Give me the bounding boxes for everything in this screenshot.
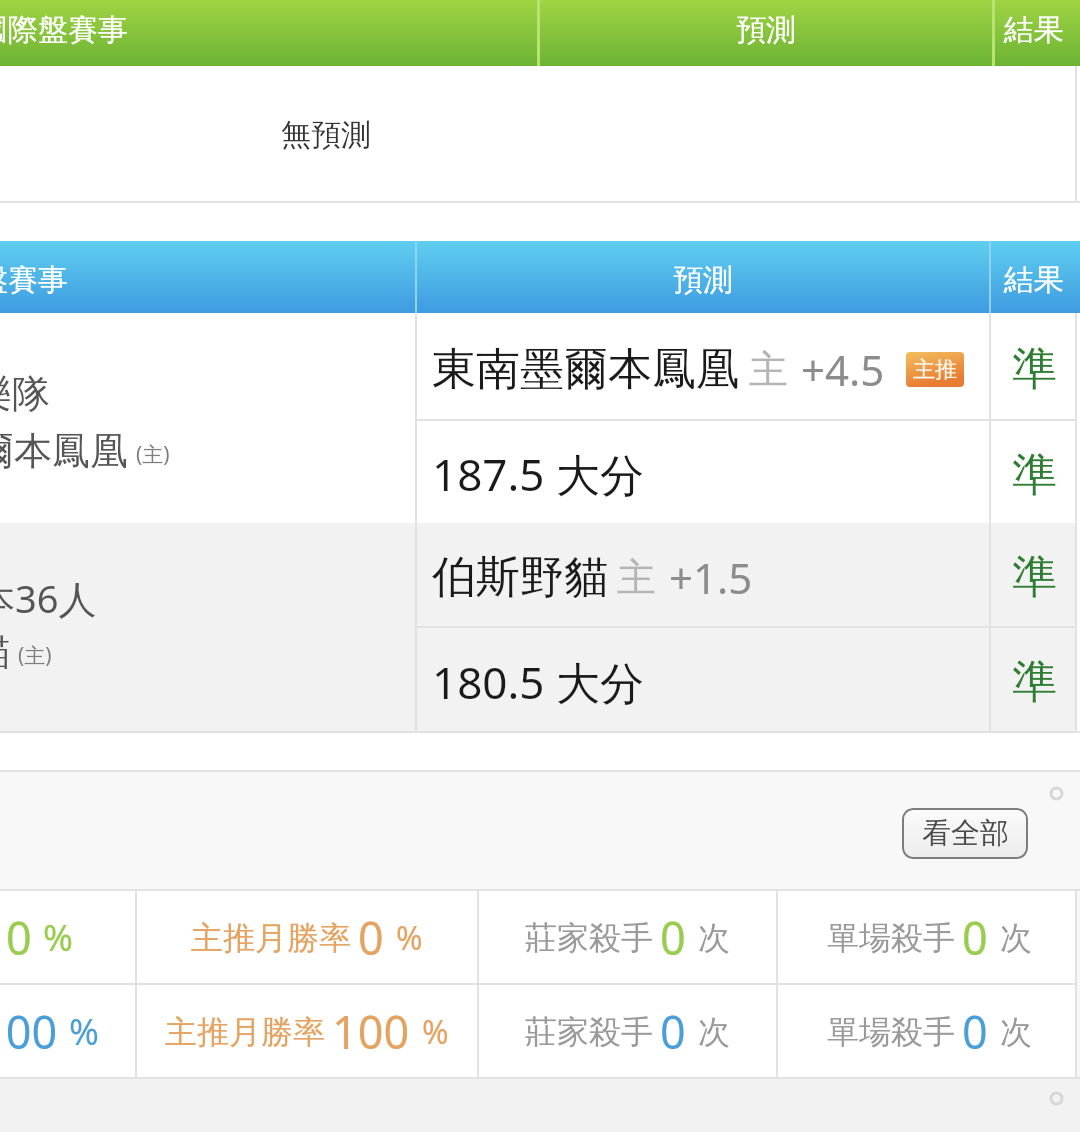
staticText: 主推月勝率 [165,1012,325,1052]
staticText: +4.5 [801,341,885,398]
staticText: 莊家殺手 [525,1012,653,1052]
staticText: 0 [962,907,988,968]
other: Info [1047,784,1066,803]
button[interactable]: 莊家殺手 [479,985,776,1077]
staticText: % [396,916,423,960]
button[interactable]: 墨爾本36人 [0,523,1080,731]
staticText: 主 [749,345,788,394]
button[interactable]: 南墨爾本樂隊 [0,313,1080,523]
button[interactable]: 結果 [995,0,1080,66]
staticText: 單場殺手 [827,1012,955,1052]
staticText: 0 [358,907,384,968]
button[interactable]: 看全部 [902,808,1028,859]
staticText: 莊家殺手 [525,918,653,958]
button[interactable]: 國際盤賽事 [0,0,537,66]
button[interactable]: 主推月勝率 [137,985,477,1077]
staticText: 伯斯野貓 [432,550,608,605]
staticText: 0 [962,1001,988,1062]
button[interactable]: 預測 [540,0,992,66]
staticText: 100 [0,1001,58,1062]
staticText: 伯斯野貓 [0,628,10,676]
staticText: 準 [1012,341,1057,398]
staticText: 東南墨爾本鳳凰 [432,342,740,397]
staticText: 0 [660,1001,686,1062]
staticText: 次 [698,918,730,958]
button[interactable]: 預測 [417,241,989,313]
staticText: (主) [136,440,170,469]
staticText: 準 [1012,549,1057,606]
staticText: 準 [1012,447,1057,504]
staticText: % [43,913,73,962]
staticText: 次 [1000,1012,1032,1052]
staticText: % [422,1010,449,1054]
button[interactable]: 單場殺手 [778,985,1080,1077]
staticText: 主推 [913,356,957,384]
staticText: 主 [617,553,656,602]
staticText: 看全部 [922,815,1009,852]
staticText: 墨爾本36人 [0,572,97,624]
staticText: 次 [698,1012,730,1052]
staticText: 預測 [673,261,733,299]
button[interactable]: 莊家殺手 [479,891,776,983]
staticText: 單場殺手 [827,918,955,958]
staticText: 東南墨爾本鳳凰 [0,427,128,475]
staticText: 國際盤賽事 [0,11,128,49]
staticText: % [69,1007,99,1056]
staticText: 準 [1012,654,1057,711]
button[interactable]: 100 [0,985,135,1077]
other: Info [1047,1089,1066,1108]
button[interactable]: 0 [0,891,135,983]
staticText: 結果 [1004,261,1064,299]
button[interactable]: 讓盤賽事 [0,241,415,313]
staticText: 預測 [736,11,796,49]
staticText: 次 [1000,918,1032,958]
button[interactable]: 單場殺手 [778,891,1080,983]
staticText: 0 [6,907,32,968]
staticText: (主) [18,641,52,670]
staticText: 187.5 大分 [432,444,644,504]
button[interactable]: 主推月勝率 [137,891,477,983]
staticText: 無預測 [281,116,371,154]
staticText: 讓盤賽事 [0,261,68,299]
staticText: 180.5 大分 [432,652,644,712]
staticText: 結果 [1004,11,1064,49]
staticText: 0 [660,907,686,968]
staticText: 主推月勝率 [191,918,351,958]
staticText: +1.5 [669,549,753,606]
button[interactable]: 結果 [991,241,1080,313]
staticText: 南墨爾本樂隊 [0,370,50,418]
staticText: 100 [332,1001,410,1062]
